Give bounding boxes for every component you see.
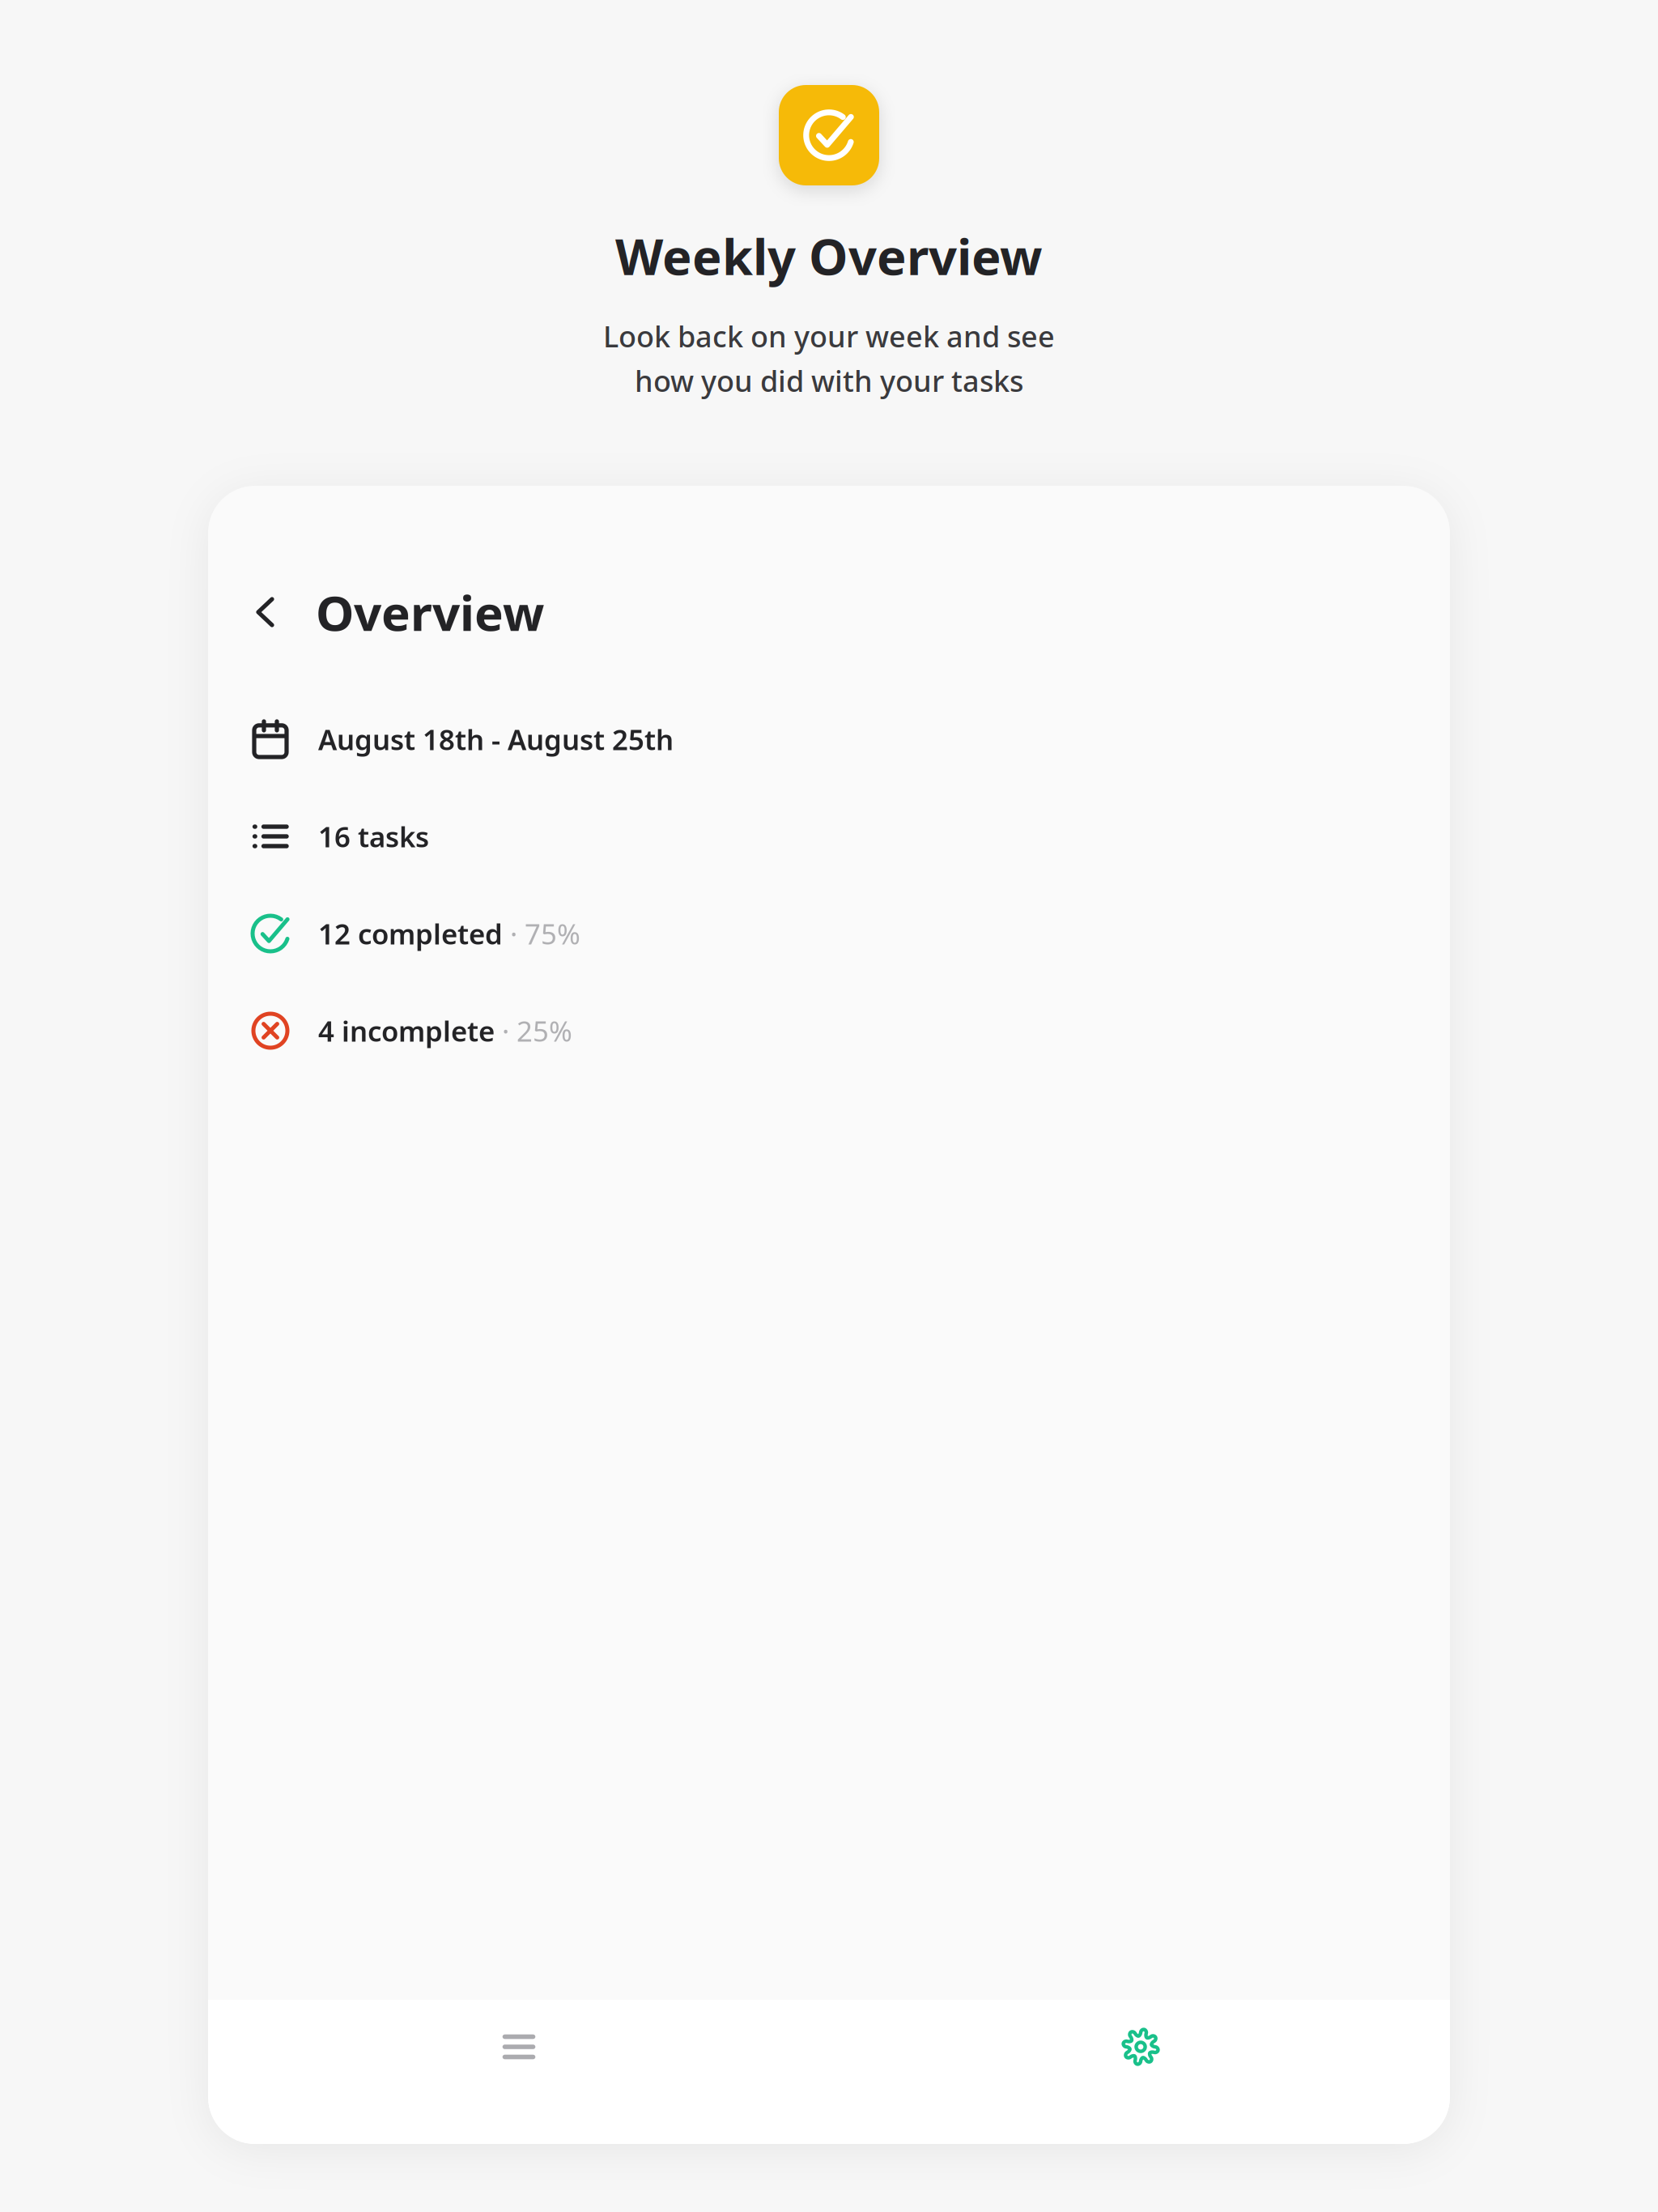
staticText: 16 tasks (318, 818, 429, 855)
staticText: Weekly Overview (615, 223, 1043, 289)
button[interactable]: Back (242, 582, 288, 642)
staticText: Overview (316, 580, 544, 644)
staticText: 12 completed (318, 915, 503, 952)
staticText: 75% (525, 915, 580, 952)
staticText: 4 incomplete (318, 1012, 495, 1049)
staticText: · (495, 1012, 517, 1049)
button[interactable]: Menu (446, 2000, 592, 2094)
button[interactable]: Settings (1068, 2000, 1214, 2094)
staticText: Look back on your week and see (603, 317, 1055, 355)
staticText: 25% (517, 1012, 572, 1049)
staticText: · (503, 915, 525, 952)
staticText: August 18th - August 25th (318, 721, 674, 758)
staticText: how you did with your tasks (635, 361, 1023, 400)
